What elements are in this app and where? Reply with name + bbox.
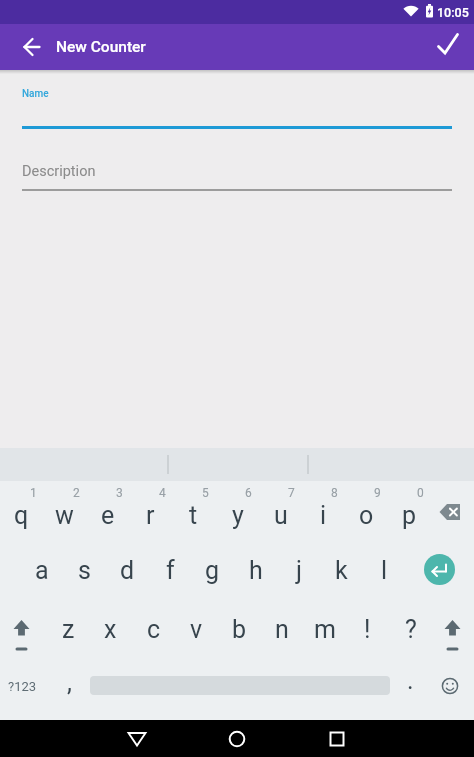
button[interactable] xyxy=(425,24,471,70)
button[interactable]: i xyxy=(302,490,345,540)
button[interactable]: n xyxy=(260,604,303,654)
button[interactable]: b xyxy=(218,604,261,654)
staticText: t xyxy=(189,501,198,530)
staticText: r xyxy=(146,501,155,530)
staticText: 7 xyxy=(288,486,295,500)
staticText: o xyxy=(359,501,374,530)
button[interactable]: m xyxy=(303,604,346,654)
button[interactable]: y xyxy=(216,490,259,540)
button[interactable]: c xyxy=(132,604,175,654)
button[interactable]: . xyxy=(390,660,430,700)
button[interactable]: x xyxy=(89,604,132,654)
button[interactable] xyxy=(429,666,471,706)
button[interactable]: Name xyxy=(22,80,452,130)
button[interactable] xyxy=(9,24,55,70)
button[interactable] xyxy=(0,603,43,655)
staticText: 6 xyxy=(245,486,252,500)
button[interactable] xyxy=(431,603,474,655)
button[interactable] xyxy=(217,720,257,757)
staticText: ! xyxy=(364,615,371,644)
staticText: 2 xyxy=(73,486,80,500)
button[interactable]: , xyxy=(49,662,89,702)
staticText: ? xyxy=(405,615,417,644)
button[interactable]: ?123 xyxy=(1,666,44,706)
staticText: c xyxy=(147,615,161,644)
button[interactable]: s xyxy=(63,545,106,595)
staticText: 3 xyxy=(116,486,123,500)
staticText: 8 xyxy=(331,486,338,500)
button[interactable]: e xyxy=(86,490,129,540)
staticText: j xyxy=(296,556,302,585)
button[interactable] xyxy=(424,554,455,585)
staticText: , xyxy=(67,668,72,697)
staticText: 4 xyxy=(159,486,166,500)
button[interactable]: j xyxy=(277,545,320,595)
staticText: x xyxy=(104,615,117,644)
button[interactable] xyxy=(431,486,474,538)
button[interactable]: l xyxy=(363,545,406,595)
staticText: w xyxy=(55,501,74,530)
button[interactable]: d xyxy=(106,545,149,595)
button[interactable] xyxy=(117,720,157,757)
staticText: u xyxy=(274,501,288,530)
button[interactable]: r xyxy=(129,490,172,540)
staticText: f xyxy=(166,556,175,585)
staticText: k xyxy=(335,556,348,585)
staticText: v xyxy=(190,615,203,644)
staticText: l xyxy=(381,556,388,585)
staticText: a xyxy=(35,556,49,585)
staticText: s xyxy=(78,556,91,585)
button[interactable]: v xyxy=(175,604,218,654)
staticText: New Counter xyxy=(56,38,146,56)
button[interactable]: f xyxy=(149,545,192,595)
button[interactable]: p xyxy=(388,490,431,540)
button[interactable]: u xyxy=(259,490,302,540)
staticText: 1 xyxy=(30,486,37,500)
staticText: m xyxy=(314,615,336,644)
button[interactable]: t xyxy=(172,490,215,540)
staticText: g xyxy=(205,556,220,585)
button[interactable]: ? xyxy=(389,604,432,654)
staticText: b xyxy=(232,615,247,644)
staticText: ?123 xyxy=(8,679,37,694)
staticText: 9 xyxy=(374,486,381,500)
staticText: 5 xyxy=(202,486,209,500)
button[interactable]: h xyxy=(234,545,277,595)
button[interactable] xyxy=(317,720,357,757)
button[interactable]: Description xyxy=(22,155,452,191)
staticText: Name xyxy=(22,88,49,100)
staticText: . xyxy=(407,666,414,695)
button[interactable]: k xyxy=(320,545,363,595)
staticText: i xyxy=(320,501,327,530)
staticText: 10:05 xyxy=(437,5,469,20)
staticText: e xyxy=(101,501,115,530)
button[interactable]: ! xyxy=(346,604,389,654)
staticText: d xyxy=(120,556,135,585)
staticText: h xyxy=(249,556,263,585)
staticText: q xyxy=(14,501,29,530)
button[interactable]: a xyxy=(20,545,63,595)
staticText: p xyxy=(402,501,417,530)
button[interactable]: z xyxy=(47,604,90,654)
staticText: 0 xyxy=(417,486,424,500)
button[interactable]: g xyxy=(191,545,234,595)
staticText: n xyxy=(275,615,289,644)
staticText: y xyxy=(232,501,244,530)
button[interactable]: o xyxy=(345,490,388,540)
staticText: z xyxy=(62,615,75,644)
button[interactable]: q xyxy=(0,490,43,540)
staticText: Description xyxy=(22,163,96,180)
button[interactable]: w xyxy=(43,490,86,540)
